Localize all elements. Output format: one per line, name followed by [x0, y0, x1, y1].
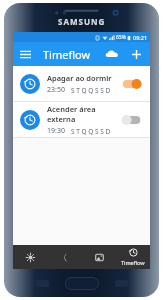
button[interactable]: Night mode [48, 245, 82, 269]
staticText: 19:30 [47, 126, 65, 136]
staticText: 65% [116, 34, 126, 41]
staticText: Timeflow [121, 259, 145, 266]
button[interactable]: Brightness [13, 245, 48, 269]
staticText: 09:21 [133, 34, 148, 41]
staticText: Timeflow [43, 47, 91, 62]
button[interactable]: Add alarm [124, 42, 148, 66]
staticText: Apagar ao dormir [47, 73, 112, 83]
button[interactable]: Scenes [82, 245, 116, 269]
button[interactable]: Alarm on [121, 77, 143, 91]
staticText: Acender área externa [47, 104, 117, 124]
button[interactable]: Cloud sync [100, 42, 124, 66]
button[interactable]: Open navigation menu [13, 42, 37, 66]
button[interactable]: Apagar ao dormir [13, 66, 150, 101]
staticText: SAMSUNG [58, 16, 106, 27]
staticText: S T Q Q S S D [71, 127, 111, 136]
button[interactable]: Alarm off [121, 113, 143, 127]
staticText: S T Q Q S S D [71, 86, 111, 95]
button[interactable]: Acender área externa [13, 102, 150, 137]
staticText: 23:50 [47, 85, 65, 95]
button[interactable]: Timeflow [116, 245, 150, 269]
